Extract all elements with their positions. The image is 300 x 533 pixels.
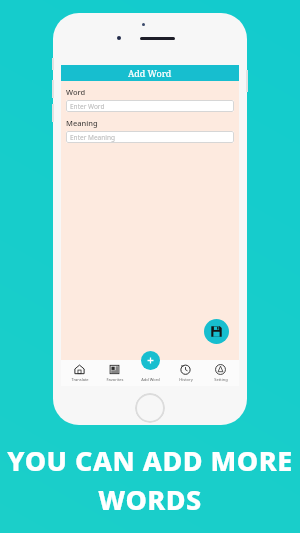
staticText: Translate — [71, 377, 89, 382]
staticText: Enter Word — [70, 102, 105, 111]
staticText: Setting — [214, 377, 228, 382]
button[interactable]: Add Word — [141, 351, 160, 370]
staticText: YOU CAN ADD MORE — [7, 442, 293, 479]
staticText: History — [179, 377, 193, 382]
button[interactable]: Translate — [63, 362, 96, 384]
button[interactable]: Favorites — [98, 362, 131, 384]
button[interactable]: Enter Meaning — [66, 131, 234, 143]
staticText: Meaning — [66, 118, 98, 128]
button[interactable]: Setting — [204, 362, 237, 384]
staticText: WORDS — [98, 481, 202, 518]
button[interactable]: History — [169, 362, 202, 384]
staticText: Favorites — [106, 377, 124, 382]
button[interactable]: Save — [204, 319, 229, 344]
button[interactable]: Enter Word — [66, 100, 234, 112]
staticText: Word — [66, 87, 86, 97]
staticText: Add Word — [141, 377, 160, 382]
button[interactable]: Add Word — [134, 362, 167, 384]
staticText: Add Word — [128, 67, 172, 79]
staticText: Enter Meaning — [70, 133, 115, 142]
